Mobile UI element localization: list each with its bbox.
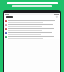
button[interactable]: [4, 35, 60, 39]
button[interactable]: Search: [56, 16, 58, 18]
button[interactable]: [4, 19, 60, 23]
button[interactable]: [4, 27, 60, 31]
button[interactable]: [4, 31, 60, 35]
button[interactable]: Search: [4, 15, 60, 19]
button[interactable]: [4, 23, 60, 27]
